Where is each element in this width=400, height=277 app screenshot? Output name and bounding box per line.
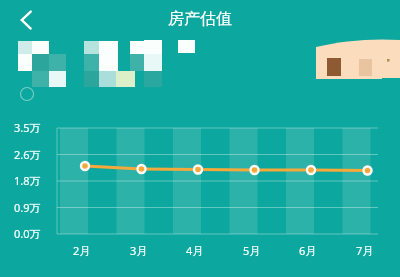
staticText: 1.8万 bbox=[14, 173, 41, 188]
staticText: 5月 bbox=[243, 243, 261, 258]
button[interactable]: Back bbox=[6, 2, 50, 36]
staticText: 2月 bbox=[73, 243, 91, 258]
staticText: 房产估值 bbox=[0, 9, 400, 277]
staticText: 7月 bbox=[356, 243, 374, 258]
staticText: 0.9万 bbox=[14, 200, 41, 215]
staticText: 6月 bbox=[299, 243, 317, 258]
staticText: 3.5万 bbox=[14, 120, 41, 135]
staticText: 2.6万 bbox=[14, 147, 41, 162]
staticText: 3月 bbox=[130, 243, 148, 258]
staticText: 4月 bbox=[186, 243, 204, 258]
staticText: 0.0万 bbox=[14, 226, 41, 241]
